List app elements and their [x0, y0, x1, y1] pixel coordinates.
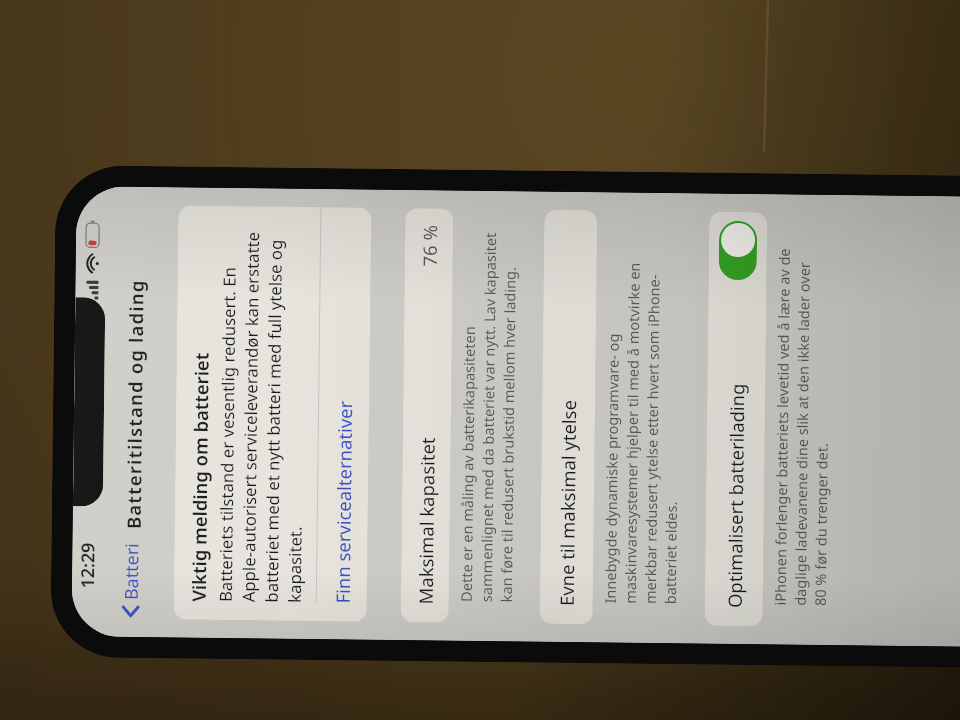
staticText: 12:29	[75, 542, 99, 589]
button[interactable]: Optimalisert batterilading	[704, 212, 767, 626]
staticText: Batteritilstand og lading	[121, 279, 148, 529]
button[interactable]: Evne til maksimal ytelse	[539, 210, 597, 624]
button[interactable]: Maksimal kapasitet	[401, 208, 453, 623]
staticText: Innebygde dynamiske programvare- og mask…	[600, 197, 684, 604]
staticText: Batteri	[119, 543, 143, 600]
staticText: Evne til maksimal ytelse	[554, 400, 581, 606]
staticText: Optimalisert batterilading	[722, 383, 749, 608]
button[interactable]: Finn servicealternativer	[317, 207, 371, 622]
button[interactable]: Optimalisert batterilading	[719, 221, 757, 280]
staticText: Dette er en måling av batterikapasiteten…	[456, 196, 520, 602]
staticText: Finn servicealternativer	[330, 400, 357, 604]
staticText: Batteriets tilstand er vesentlig reduser…	[214, 231, 310, 603]
staticText: Maksimal kapasitet	[413, 437, 440, 604]
staticText: 76 %	[417, 224, 442, 266]
staticText: Viktig melding om batteriet	[186, 353, 214, 602]
button[interactable]: Batteri	[112, 534, 150, 627]
staticText: iPhonen forlenger batteriets levetid ved…	[770, 199, 834, 606]
